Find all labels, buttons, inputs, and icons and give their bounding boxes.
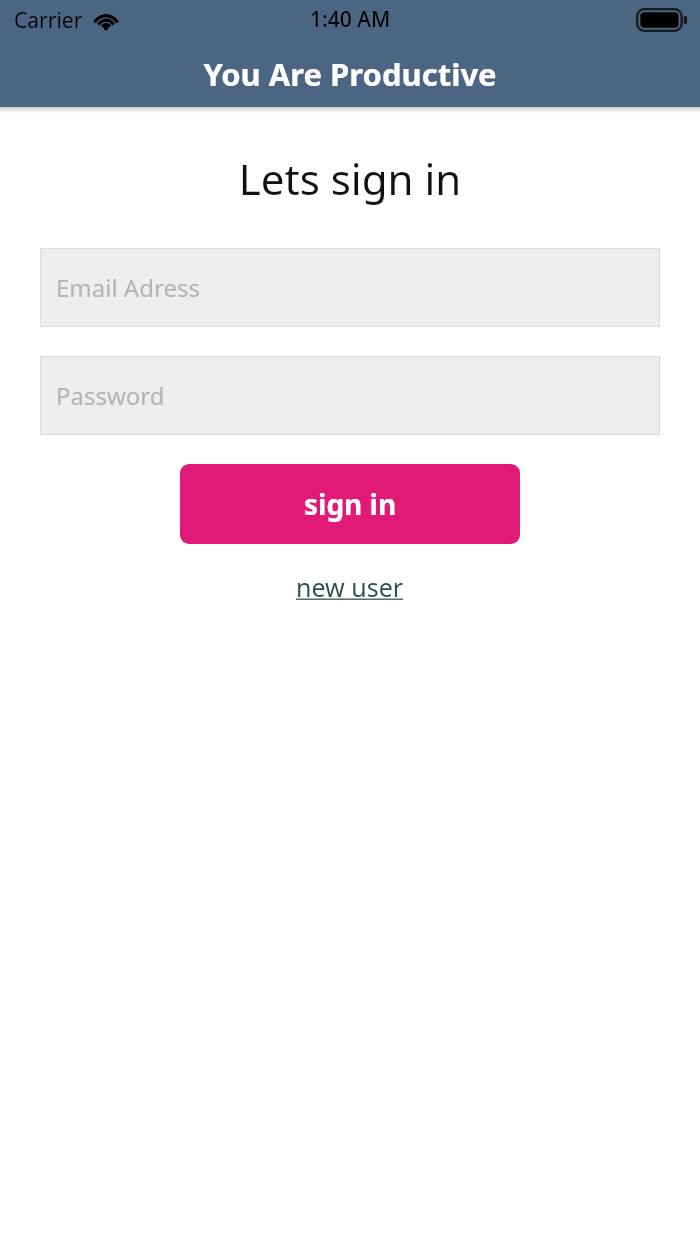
button[interactable]: Email Adress — [40, 248, 660, 327]
button[interactable]: sign in — [180, 464, 520, 544]
button[interactable]: new user — [292, 568, 408, 606]
other: Battery full — [636, 8, 688, 32]
other: Wi-Fi signal — [92, 10, 120, 32]
staticText: Lets sign in — [0, 150, 700, 207]
staticText: Carrier — [14, 6, 83, 35]
staticText: sign in — [304, 485, 397, 523]
staticText: 1:40 AM — [310, 5, 391, 34]
staticText: You Are Productive — [203, 53, 497, 95]
button[interactable]: Password — [40, 356, 660, 435]
staticText: Password — [56, 379, 165, 412]
staticText: Email Adress — [56, 271, 200, 304]
staticText: new user — [296, 570, 404, 604]
